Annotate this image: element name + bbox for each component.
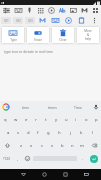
button[interactable]: z: [15, 139, 26, 152]
button[interactable]: e: [21, 113, 31, 126]
staticText: v: [51, 143, 54, 149]
button[interactable]: Type: [1, 26, 25, 44]
staticText: h: [58, 130, 61, 136]
button[interactable]: M2: [13, 17, 23, 24]
staticText: n: [71, 143, 74, 149]
button[interactable]: M1: [1, 17, 11, 24]
staticText: t: [45, 117, 47, 123]
staticText: w: [14, 117, 18, 123]
staticText: g: [47, 130, 50, 136]
button[interactable]: Image: [68, 5, 79, 15]
button[interactable]: j: [65, 126, 76, 139]
staticText: Clear: [59, 38, 67, 42]
button[interactable]: p: [91, 113, 101, 126]
button[interactable]: x: [26, 139, 37, 152]
staticText: f: [37, 130, 39, 136]
button[interactable]: v: [47, 139, 57, 152]
staticText: Time: [74, 105, 82, 110]
button[interactable]: Clipboard: [75, 15, 88, 25]
staticText: type text or dictate in real time: [4, 49, 53, 54]
staticText: s: [17, 130, 20, 136]
staticText: b: [61, 143, 64, 149]
button[interactable]: Keyboard input: [49, 15, 62, 25]
staticText: m: [80, 143, 84, 149]
button[interactable]: Apps: [90, 5, 101, 15]
staticText: e: [25, 117, 28, 123]
button[interactable]: ?123: [0, 152, 13, 165]
button[interactable]: Google: [0, 101, 12, 113]
staticText: M3: [28, 19, 33, 23]
staticText: j: [70, 130, 72, 136]
button[interactable]: o: [81, 113, 91, 126]
button[interactable]: ,: [13, 152, 22, 165]
staticText: M1: [4, 19, 9, 23]
staticText: u: [65, 117, 68, 123]
button[interactable]: M3: [25, 17, 35, 24]
button[interactable]: g: [43, 126, 54, 139]
button[interactable]: Voice input: [91, 101, 101, 113]
button[interactable]: Macro: [36, 15, 49, 25]
staticText: l: [92, 130, 94, 136]
button[interactable]: Backspace: [87, 139, 101, 152]
button[interactable]: Recents: [55, 169, 76, 180]
button[interactable]: n: [67, 139, 77, 152]
staticText: i: [75, 117, 77, 123]
staticText: x: [30, 143, 33, 149]
button[interactable]: Keyboard: [12, 5, 24, 15]
button[interactable]: f: [33, 126, 43, 139]
button[interactable]: Bold: [79, 5, 90, 15]
button[interactable]: c: [37, 139, 47, 152]
button[interactable]: Back: [13, 169, 34, 180]
button[interactable]: Clear: [51, 26, 75, 44]
button[interactable]: Text style: [57, 5, 68, 15]
staticText: c: [41, 143, 44, 149]
button[interactable]: Shift: [0, 139, 15, 152]
button[interactable]: s: [13, 126, 23, 139]
button[interactable]: Emoji: [22, 152, 32, 165]
button[interactable]: d: [23, 126, 33, 139]
button[interactable]: w: [11, 113, 21, 126]
button[interactable]: times: [39, 101, 65, 113]
button[interactable]: q: [0, 113, 11, 126]
button[interactable]: y: [51, 113, 61, 126]
button[interactable]: Time: [65, 101, 91, 113]
button[interactable]: m: [77, 139, 87, 152]
button[interactable]: Record: [62, 15, 75, 25]
button[interactable]: More options: [88, 15, 101, 25]
button[interactable]: k: [76, 126, 87, 139]
staticText: q: [4, 117, 7, 123]
staticText: time: [22, 105, 30, 110]
staticText: ,: [17, 156, 19, 161]
staticText: times: [48, 105, 57, 110]
button[interactable]: Erase: [26, 26, 50, 44]
button[interactable]: Play: [46, 5, 57, 15]
staticText: a: [7, 130, 10, 136]
button[interactable]: l: [87, 126, 98, 139]
staticText: z: [20, 143, 22, 149]
button[interactable]: r: [31, 113, 41, 126]
button[interactable]: Enter: [87, 152, 101, 165]
button[interactable]: t: [41, 113, 51, 126]
staticText: p: [95, 117, 98, 123]
staticText: r: [35, 117, 37, 123]
button[interactable]: b: [57, 139, 67, 152]
staticText: k: [80, 130, 83, 136]
staticText: More & help: [84, 29, 92, 41]
staticText: d: [27, 130, 30, 136]
button[interactable]: Adjust: [0, 5, 12, 15]
button[interactable]: a: [3, 126, 13, 139]
button[interactable]: More & help: [76, 26, 100, 44]
button[interactable]: Home: [34, 169, 55, 180]
button[interactable]: Hide keyboard: [76, 169, 97, 180]
button[interactable]: h: [54, 126, 65, 139]
button[interactable]: Pen: [24, 5, 35, 15]
button[interactable]: u: [61, 113, 71, 126]
staticText: Type: [10, 38, 17, 42]
button[interactable]: i: [71, 113, 81, 126]
staticText: o: [85, 117, 88, 123]
button[interactable]: Grid: [35, 5, 46, 15]
button[interactable]: time: [12, 101, 39, 113]
staticText: M2: [16, 19, 21, 23]
